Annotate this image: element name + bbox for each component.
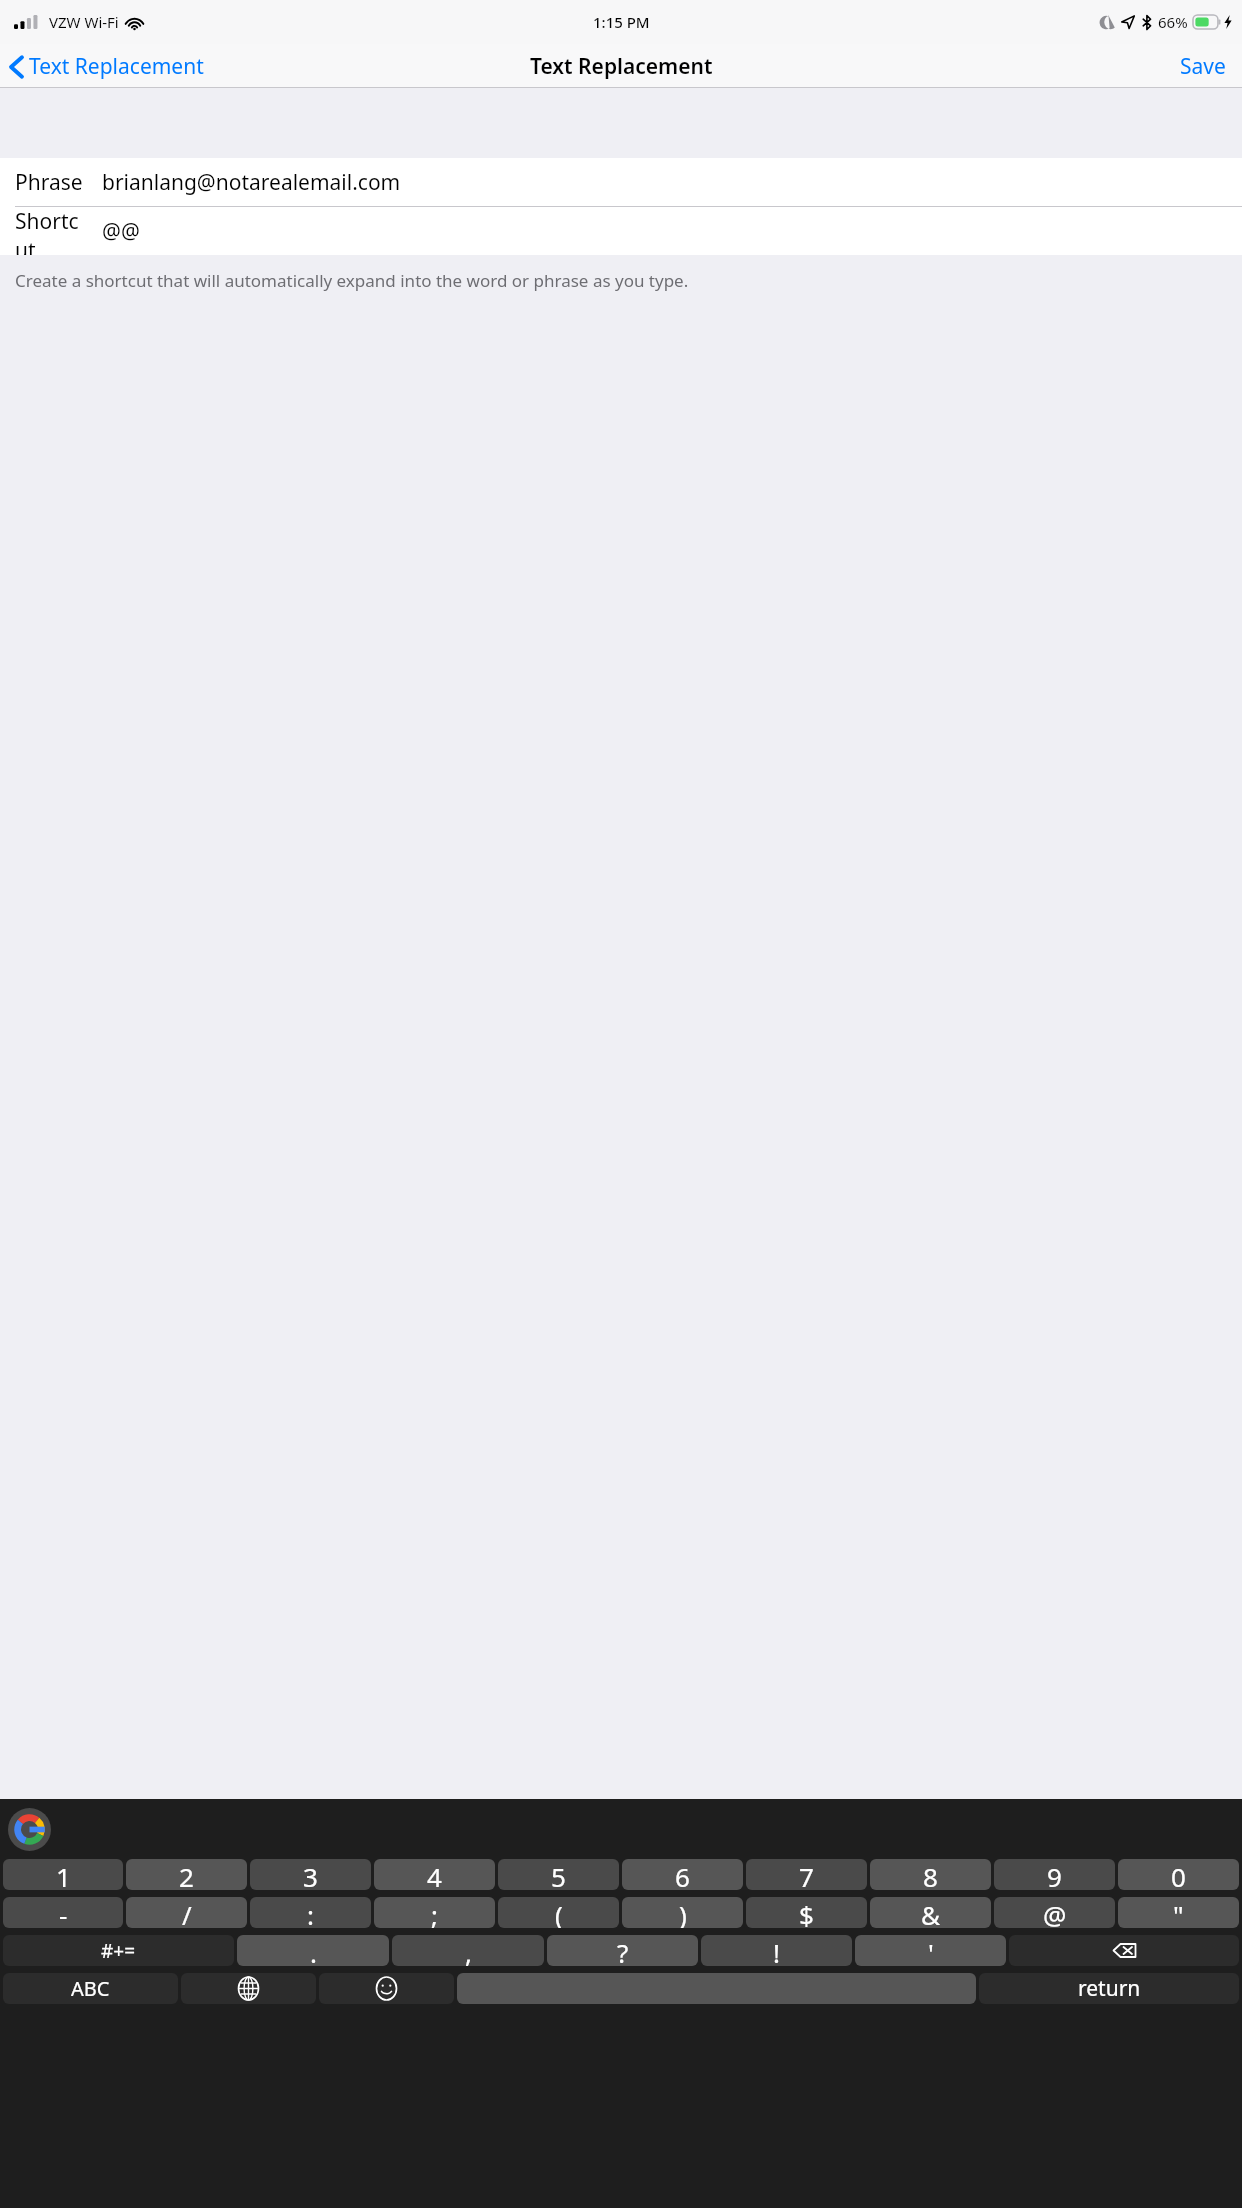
- button[interactable]: Backspace: [1009, 1935, 1239, 1966]
- staticText: @: [1043, 1897, 1067, 1928]
- staticText: 4: [427, 1859, 442, 1890]
- staticText: 7: [799, 1859, 814, 1890]
- staticText: ?: [617, 1935, 629, 1966]
- button[interactable]: Shortcut: [0, 207, 1242, 255]
- button[interactable]: /: [126, 1897, 247, 1928]
- button[interactable]: -: [3, 1897, 123, 1928]
- button[interactable]: #+=: [3, 1935, 234, 1966]
- button[interactable]: 6: [622, 1859, 743, 1890]
- button[interactable]: @: [994, 1897, 1115, 1928]
- staticText: ,: [465, 1935, 472, 1966]
- staticText: 9: [1047, 1859, 1062, 1890]
- staticText: &: [921, 1897, 941, 1928]
- button[interactable]: 5: [498, 1859, 619, 1890]
- staticText: ABC: [71, 1975, 110, 2002]
- staticText: ': [928, 1935, 934, 1966]
- button[interactable]: !: [701, 1935, 852, 1966]
- staticText: Text Replacement: [530, 52, 713, 81]
- staticText: $: [799, 1897, 814, 1928]
- button[interactable]: $: [746, 1897, 867, 1928]
- staticText: /: [182, 1897, 192, 1928]
- staticText: VZW Wi-Fi: [49, 12, 119, 32]
- button[interactable]: 9: [994, 1859, 1115, 1890]
- button[interactable]: ): [622, 1897, 743, 1928]
- staticText: ;: [431, 1897, 438, 1928]
- button[interactable]: 3: [250, 1859, 371, 1890]
- staticText: 8: [923, 1859, 938, 1890]
- button[interactable]: ;: [374, 1897, 495, 1928]
- button[interactable]: ?: [547, 1935, 698, 1966]
- button[interactable]: 2: [126, 1859, 247, 1890]
- staticText: !: [773, 1935, 780, 1966]
- staticText: 2: [179, 1859, 194, 1890]
- staticText: return: [1078, 1974, 1141, 2003]
- button[interactable]: ": [1118, 1897, 1239, 1928]
- button[interactable]: .: [237, 1935, 389, 1966]
- staticText: .: [310, 1935, 317, 1966]
- staticText: 0: [1171, 1859, 1186, 1890]
- staticText: ): [679, 1897, 687, 1928]
- button[interactable]: Emoji: [319, 1973, 454, 2004]
- button[interactable]: 0: [1118, 1859, 1239, 1890]
- staticText: 6: [675, 1859, 690, 1890]
- button[interactable]: Google: [8, 1808, 51, 1851]
- staticText: 5: [551, 1859, 566, 1890]
- staticText: #+=: [101, 1938, 136, 1964]
- button[interactable]: 4: [374, 1859, 495, 1890]
- staticText: brianlang@notarealemail.com: [102, 168, 401, 197]
- button[interactable]: Text Replacement: [0, 48, 212, 85]
- staticText: Save: [1180, 52, 1226, 81]
- button[interactable]: 8: [870, 1859, 991, 1890]
- button[interactable]: &: [870, 1897, 991, 1928]
- staticText: (: [555, 1897, 563, 1928]
- staticText: Text Replacement: [29, 52, 204, 81]
- staticText: 1: [56, 1859, 71, 1890]
- staticText: Shortcut: [15, 207, 86, 255]
- button[interactable]: Phrase: [0, 158, 1242, 206]
- button[interactable]: 7: [746, 1859, 867, 1890]
- staticText: 3: [303, 1859, 318, 1890]
- staticText: 1:15 PM: [593, 12, 650, 32]
- button[interactable]: ABC: [3, 1973, 178, 2004]
- staticText: @@: [102, 217, 140, 246]
- button[interactable]: return: [979, 1973, 1239, 2004]
- staticText: :: [307, 1897, 314, 1928]
- staticText: -: [59, 1897, 68, 1928]
- button[interactable]: ': [855, 1935, 1006, 1966]
- staticText: 66%: [1158, 12, 1188, 32]
- staticText: Phrase: [15, 168, 83, 197]
- button[interactable]: (: [498, 1897, 619, 1928]
- button[interactable]: 1: [3, 1859, 123, 1890]
- button[interactable]: Save: [1164, 46, 1242, 87]
- staticText: Create a shortcut that will automaticall…: [15, 269, 689, 292]
- staticText: ": [1173, 1897, 1184, 1928]
- button[interactable]: Change keyboard: [181, 1973, 316, 2004]
- button[interactable]: ,: [392, 1935, 544, 1966]
- button[interactable]: :: [250, 1897, 371, 1928]
